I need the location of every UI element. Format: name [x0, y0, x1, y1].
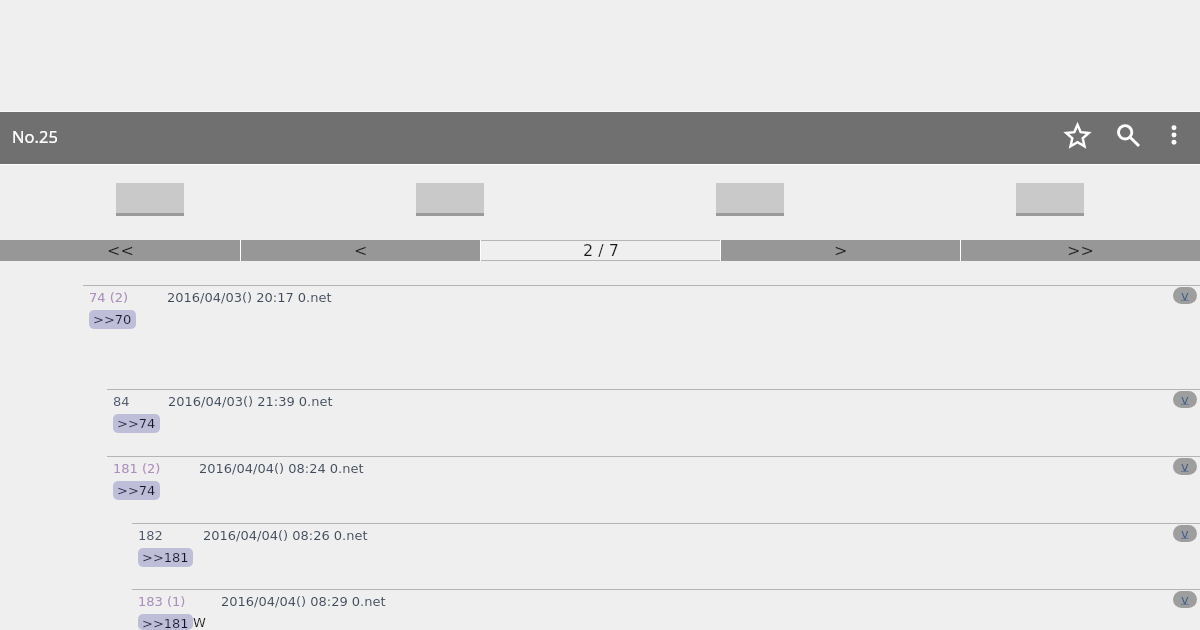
button[interactable]: 183 (1)	[0, 589, 1200, 630]
staticText: 84	[113, 394, 130, 409]
staticText: v	[1181, 526, 1189, 541]
button[interactable]: 182	[0, 523, 1200, 589]
button[interactable]: >	[721, 240, 960, 261]
staticText: >	[834, 241, 848, 260]
staticText: v	[1181, 459, 1189, 474]
staticText: 182	[138, 528, 163, 543]
staticText: W	[193, 615, 206, 630]
button[interactable]: 84	[0, 389, 1200, 456]
staticText: 2016/04/03() 20:17 0.net	[167, 290, 332, 305]
button[interactable]: Tab 2	[300, 165, 600, 240]
button[interactable]: Favorite	[1050, 112, 1105, 158]
staticText: >>70	[93, 312, 132, 327]
button[interactable]: >>	[961, 240, 1200, 261]
button[interactable]: Tab 4	[900, 165, 1200, 240]
button[interactable]: More options	[1151, 112, 1197, 158]
button[interactable]: >>74	[113, 481, 160, 500]
staticText: >>74	[117, 416, 156, 431]
staticText: v	[1181, 392, 1189, 407]
staticText: 181 (2)	[113, 461, 161, 476]
button[interactable]: >>70	[89, 310, 136, 329]
staticText: <	[354, 241, 368, 260]
button[interactable]: Expand	[1173, 391, 1197, 408]
staticText: >>181	[142, 550, 189, 565]
staticText: <<	[107, 241, 134, 260]
staticText: 74 (2)	[89, 290, 129, 305]
staticText: No.25	[12, 125, 58, 147]
button[interactable]: Tab 1	[0, 165, 300, 240]
staticText: 2016/04/04() 08:26 0.net	[203, 528, 368, 543]
button[interactable]: 181 (2)	[0, 456, 1200, 523]
button[interactable]: <	[241, 240, 480, 261]
staticText: 2 / 7	[583, 241, 619, 260]
button[interactable]: 2 / 7	[481, 240, 720, 261]
button[interactable]: >>181	[138, 548, 193, 567]
staticText: >>181	[142, 616, 189, 628]
button[interactable]: Tab 3	[600, 165, 900, 240]
staticText: v	[1181, 288, 1189, 303]
staticText: 2016/04/04() 08:24 0.net	[199, 461, 364, 476]
button[interactable]: Expand	[1173, 458, 1197, 475]
button[interactable]: Expand	[1173, 287, 1197, 304]
staticText: 2016/04/04() 08:29 0.net	[221, 594, 386, 609]
button[interactable]: 74 (2)	[0, 285, 1200, 389]
staticText: 183 (1)	[138, 594, 186, 609]
button[interactable]: >>74	[113, 414, 160, 433]
button[interactable]: <<	[0, 240, 240, 261]
staticText: v	[1181, 592, 1189, 607]
staticText: >>	[1067, 241, 1094, 260]
button[interactable]: Expand	[1173, 525, 1197, 542]
button[interactable]: Search	[1105, 112, 1151, 158]
staticText: 2016/04/03() 21:39 0.net	[168, 394, 333, 409]
staticText: >>74	[117, 483, 156, 498]
button[interactable]: >>181	[138, 614, 193, 630]
button[interactable]: Expand	[1173, 591, 1197, 608]
